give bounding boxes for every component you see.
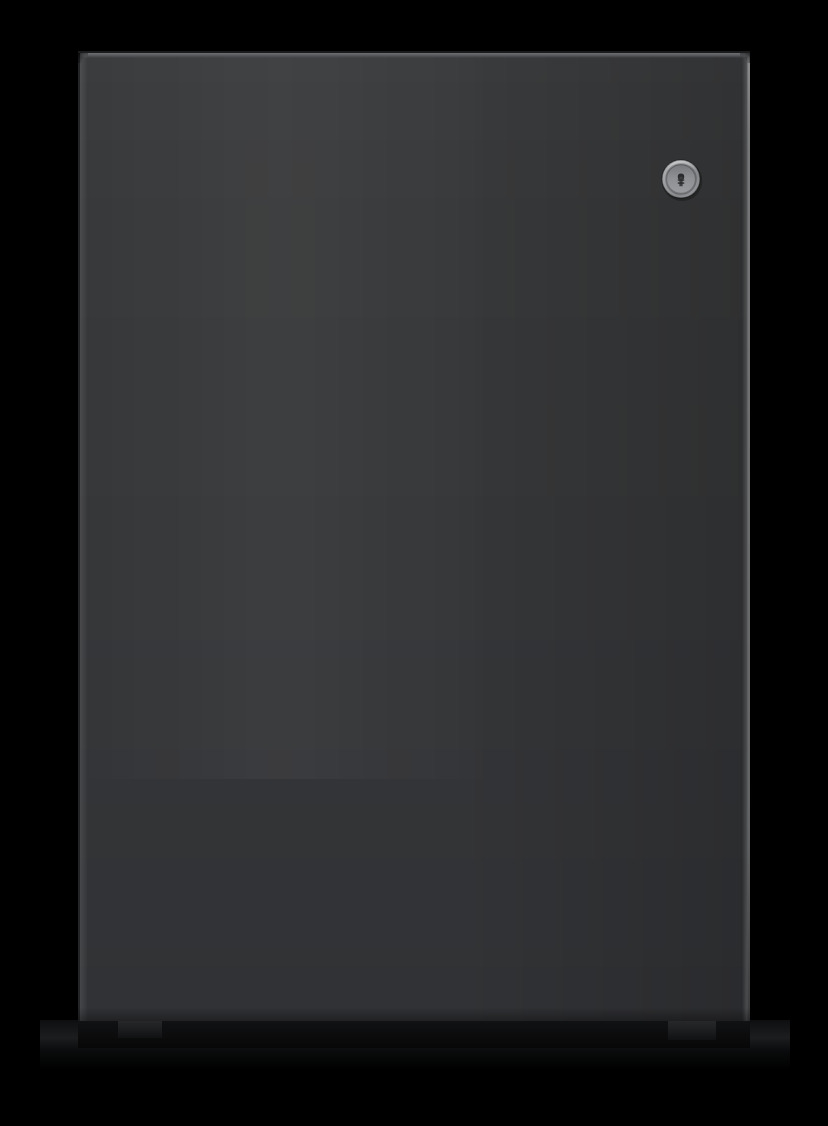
button[interactable]: Cabinet door with lock (0, 0, 828, 1126)
